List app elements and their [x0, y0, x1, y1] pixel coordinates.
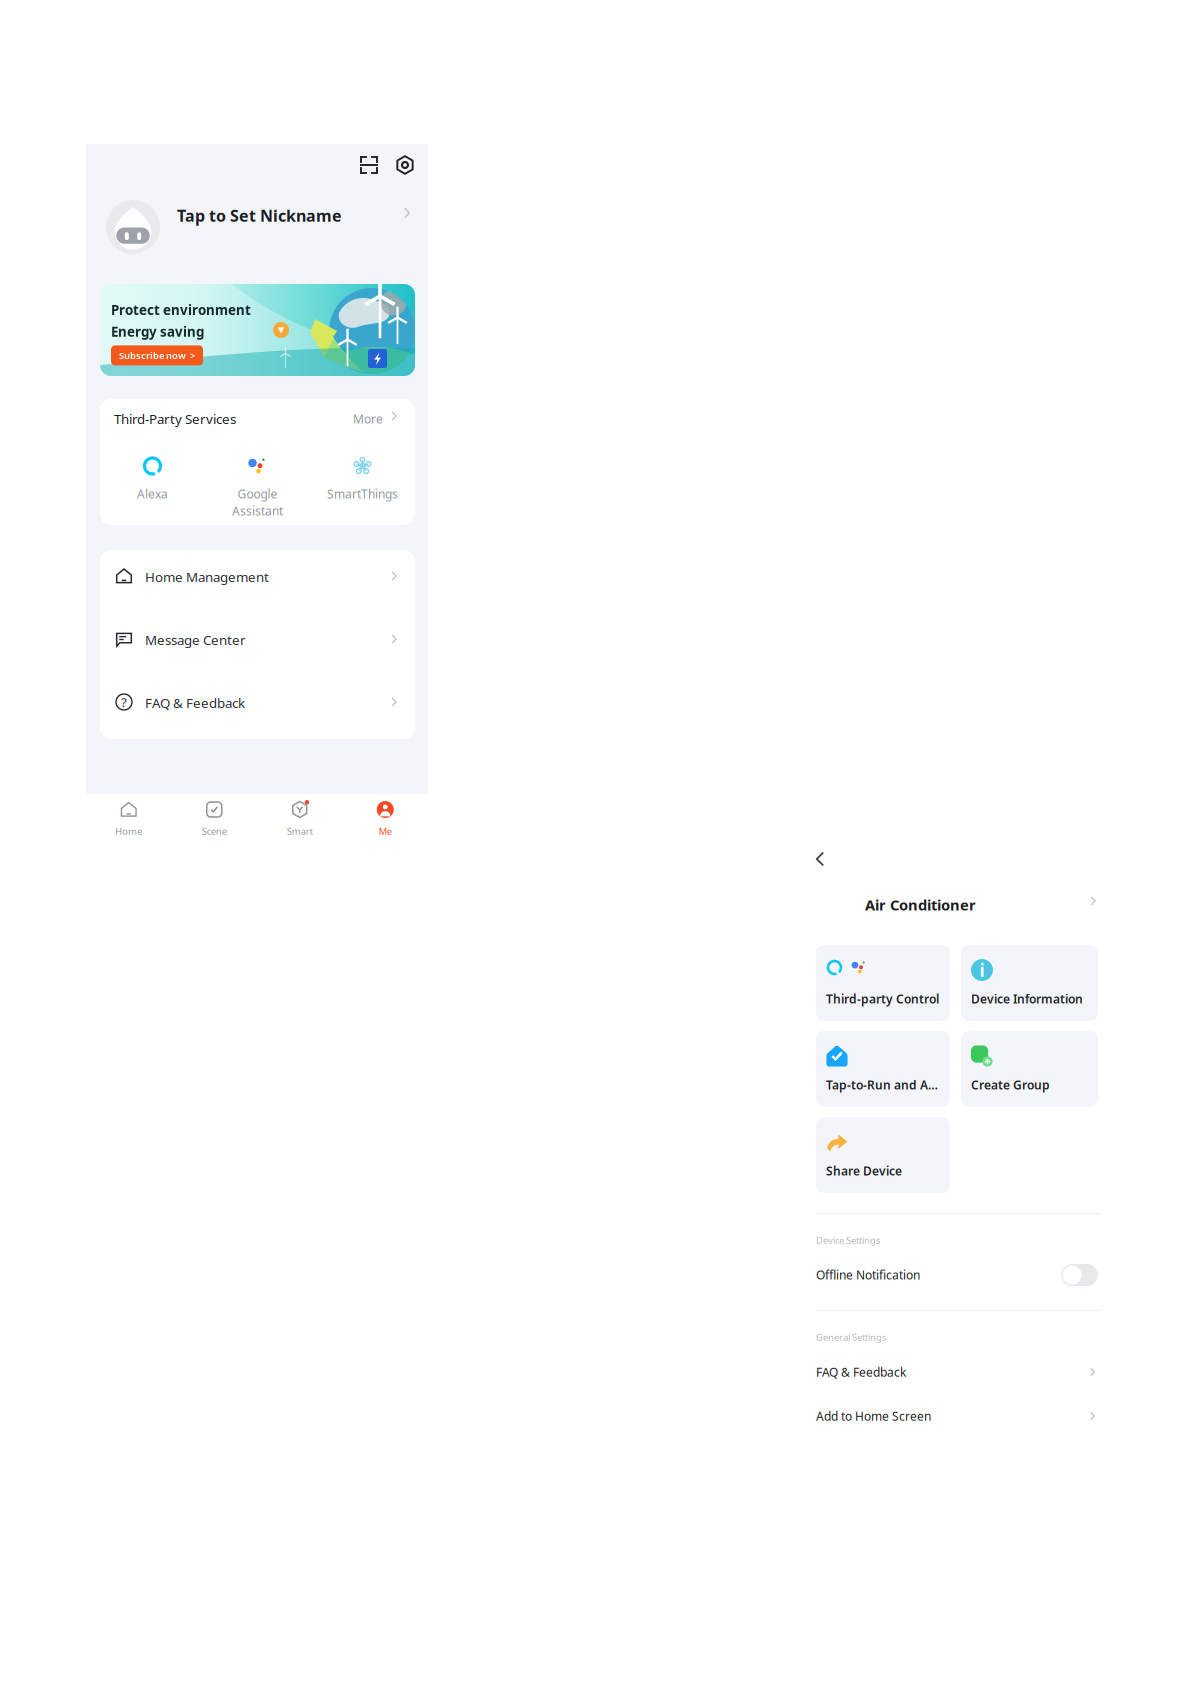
staticText: Home Management [145, 568, 269, 586]
staticText: General Settings [816, 1331, 886, 1343]
staticText: Tap to Set Nickname [177, 205, 342, 226]
staticText: Share Device [826, 1163, 902, 1179]
staticText: FAQ & Feedback [145, 694, 245, 712]
button[interactable]: FAQ & Feedback [816, 1350, 1098, 1394]
staticText: Offline Notification [816, 1267, 920, 1283]
button[interactable]: Scan [356, 152, 382, 178]
staticText: Protect environment [111, 301, 251, 319]
button[interactable]: Offline Notification [1061, 1264, 1098, 1286]
staticText: Third-Party Services [114, 410, 236, 428]
staticText: Third-party Control [826, 991, 939, 1007]
button[interactable]: Third-Party Services [100, 399, 415, 443]
button[interactable]: i [961, 945, 1098, 1021]
button[interactable]: Tap to Set Nickname [86, 198, 428, 258]
button[interactable]: Air Conditioner [816, 894, 1098, 918]
staticText: Me [379, 825, 392, 837]
button[interactable]: Home [86, 794, 171, 844]
staticText: Energy saving [111, 323, 204, 340]
staticText: Tap-to-Run and A… [826, 1077, 938, 1093]
button[interactable]: Back [808, 847, 832, 871]
button[interactable]: Smart [257, 794, 342, 844]
staticText: SmartThings [327, 486, 398, 502]
button[interactable]: Settings [392, 152, 418, 178]
button[interactable]: ? [100, 676, 415, 739]
staticText: Alexa [137, 486, 168, 502]
button[interactable]: Alexa [100, 455, 205, 527]
button[interactable]: Google [205, 455, 310, 527]
staticText: FAQ & Feedback [816, 1364, 906, 1380]
staticText: More [353, 411, 383, 427]
staticText: Add to Home Screen [816, 1408, 931, 1424]
staticText: Message Center [145, 631, 246, 649]
button[interactable]: Scene [171, 794, 257, 844]
staticText: Subscribe now [119, 349, 186, 362]
staticText: Device Information [971, 991, 1083, 1007]
staticText: Smart [287, 825, 313, 837]
button[interactable]: Create Group [961, 1031, 1098, 1107]
button[interactable]: Message Center [100, 613, 415, 676]
staticText: Assistant [232, 503, 283, 519]
staticText: Scene [202, 825, 227, 837]
staticText: i [979, 958, 984, 981]
staticText: Device Settings [816, 1234, 880, 1246]
staticText: Home [115, 825, 142, 837]
button[interactable]: Add to Home Screen [816, 1394, 1098, 1438]
button[interactable]: Home Management [100, 550, 415, 613]
button[interactable]: Tap-to-Run and A… [816, 1031, 950, 1107]
staticText: Air Conditioner [865, 895, 976, 914]
button[interactable]: SmartThings [310, 455, 415, 527]
staticText: > [190, 349, 195, 362]
staticText: ? [121, 693, 127, 711]
button[interactable]: Share Device [816, 1117, 950, 1193]
staticText: Create Group [971, 1077, 1050, 1093]
staticText: Google [237, 486, 277, 502]
button[interactable]: Me [342, 794, 428, 844]
button[interactable]: Protect environment [100, 284, 415, 376]
button[interactable]: Third-party Control [816, 945, 950, 1021]
